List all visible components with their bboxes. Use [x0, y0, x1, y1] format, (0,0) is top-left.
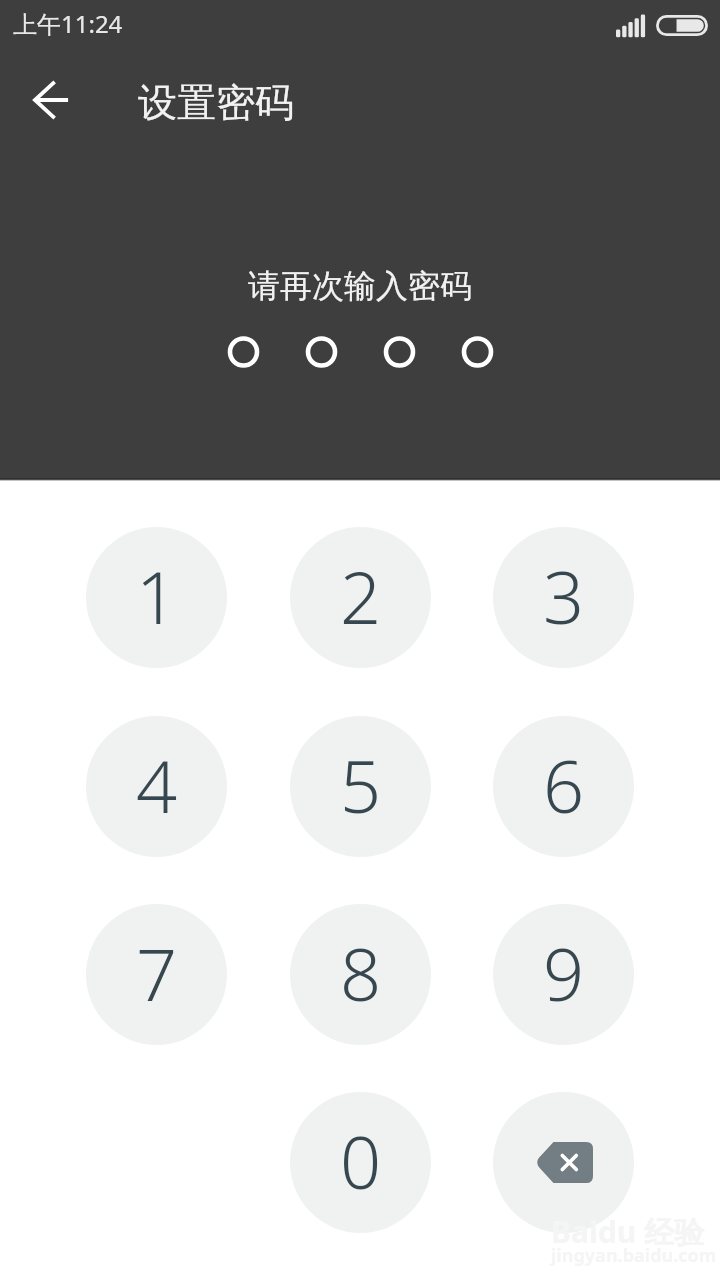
staticText: 8 — [340, 924, 382, 1022]
button[interactable]: 2 — [290, 527, 431, 668]
button[interactable]: 8 — [290, 904, 431, 1045]
button[interactable]: 7 — [86, 904, 227, 1045]
other: Cellular signal — [616, 12, 646, 37]
staticText: Baidu 经验 — [551, 1211, 705, 1252]
staticText: 1 — [136, 547, 178, 645]
staticText: 设置密码 — [138, 78, 294, 127]
button[interactable]: 4 — [86, 716, 227, 857]
button[interactable]: 0 — [290, 1092, 431, 1233]
staticText: 5 — [340, 736, 382, 834]
staticText: 7 — [136, 924, 178, 1022]
button[interactable]: 3 — [493, 527, 634, 668]
button[interactable]: 1 — [86, 527, 227, 668]
staticText: 2 — [340, 547, 382, 645]
button[interactable]: 5 — [290, 716, 431, 857]
staticText: 6 — [543, 736, 585, 834]
button[interactable]: Back — [15, 64, 87, 136]
staticText: 0 — [340, 1112, 382, 1210]
staticText: 请再次输入密码 — [248, 266, 472, 306]
staticText: 上午11:24 — [13, 7, 123, 40]
other: Battery — [656, 15, 708, 36]
staticText: 3 — [543, 547, 585, 645]
button[interactable]: 6 — [493, 716, 634, 857]
button[interactable]: 9 — [493, 904, 634, 1045]
staticText: jingyan.baidu.com — [551, 1243, 717, 1268]
staticText: 9 — [543, 924, 585, 1022]
staticText: 4 — [136, 736, 178, 834]
button[interactable]: Delete — [493, 1092, 634, 1233]
